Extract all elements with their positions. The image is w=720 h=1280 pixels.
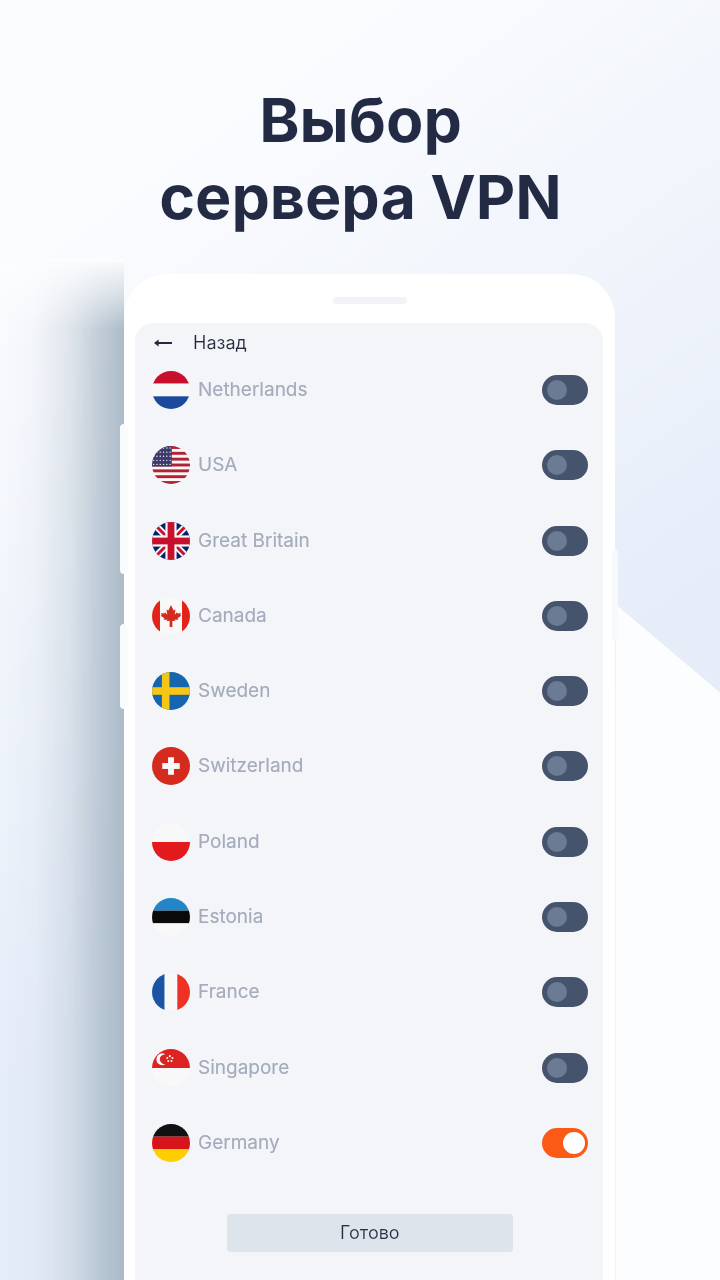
staticText: Выбор сервера VPN (159, 83, 562, 233)
staticText: Estonia (198, 905, 264, 928)
button[interactable]: Готово (227, 1214, 513, 1252)
staticText: Готово (340, 1222, 400, 1244)
button[interactable]: Germany (135, 1105, 603, 1180)
button[interactable]: Singapore (135, 1030, 603, 1105)
other: Back (154, 336, 172, 350)
staticText: Назад (193, 332, 247, 354)
staticText: Netherlands (198, 378, 308, 401)
button[interactable]: Connect (542, 526, 588, 556)
staticText: France (198, 980, 260, 1003)
button[interactable]: Canada (135, 578, 603, 653)
button[interactable]: Connect (542, 375, 588, 405)
button[interactable]: Switzerland (135, 728, 603, 803)
button[interactable]: Connect (542, 601, 588, 631)
staticText: Switzerland (198, 754, 304, 777)
button[interactable]: Sweden (135, 653, 603, 728)
staticText: Canada (198, 604, 267, 627)
button[interactable]: Connect (542, 450, 588, 480)
button[interactable]: Netherlands (135, 352, 603, 427)
button[interactable]: USA (135, 427, 603, 502)
staticText: USA (198, 453, 238, 476)
staticText: Great Britain (198, 529, 310, 552)
button[interactable]: Connect (542, 1053, 588, 1083)
button[interactable]: Back (135, 327, 603, 358)
button[interactable]: Connect (542, 676, 588, 706)
staticText: Poland (198, 830, 260, 853)
staticText: Germany (198, 1131, 280, 1154)
button[interactable]: Great Britain (135, 503, 603, 578)
staticText: Singapore (198, 1056, 290, 1079)
button[interactable]: Connect (542, 827, 588, 857)
button[interactable]: Connect (542, 751, 588, 781)
button[interactable]: Connect (542, 902, 588, 932)
button[interactable]: Estonia (135, 879, 603, 954)
button[interactable]: Disconnect Germany (542, 1128, 588, 1158)
button[interactable]: Connect (542, 977, 588, 1007)
button[interactable]: Poland (135, 804, 603, 879)
button[interactable]: France (135, 954, 603, 1029)
staticText: Sweden (198, 679, 271, 702)
